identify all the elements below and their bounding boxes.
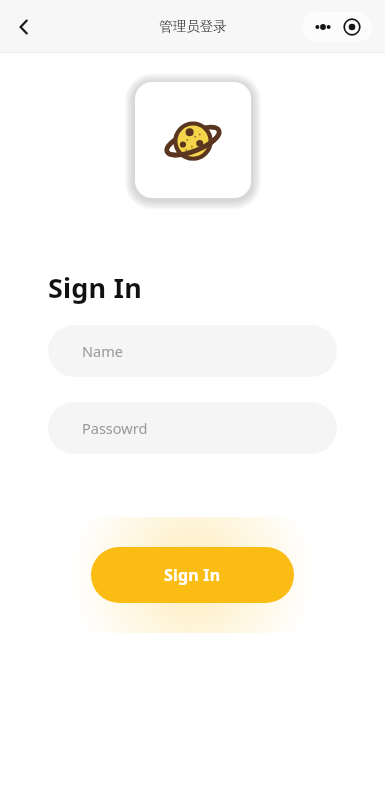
button[interactable]: Passowrd — [48, 402, 337, 454]
button[interactable]: Menu and close — [302, 12, 372, 42]
staticText: Sign In — [164, 564, 221, 586]
staticText: 管理员登录 — [159, 18, 227, 35]
button[interactable]: Name — [48, 325, 337, 377]
staticText: Sign In — [48, 269, 143, 306]
staticText: Passowrd — [82, 418, 148, 438]
button[interactable]: Sign In — [91, 547, 294, 603]
button[interactable]: Back — [4, 7, 44, 47]
staticText: Name — [82, 341, 123, 361]
